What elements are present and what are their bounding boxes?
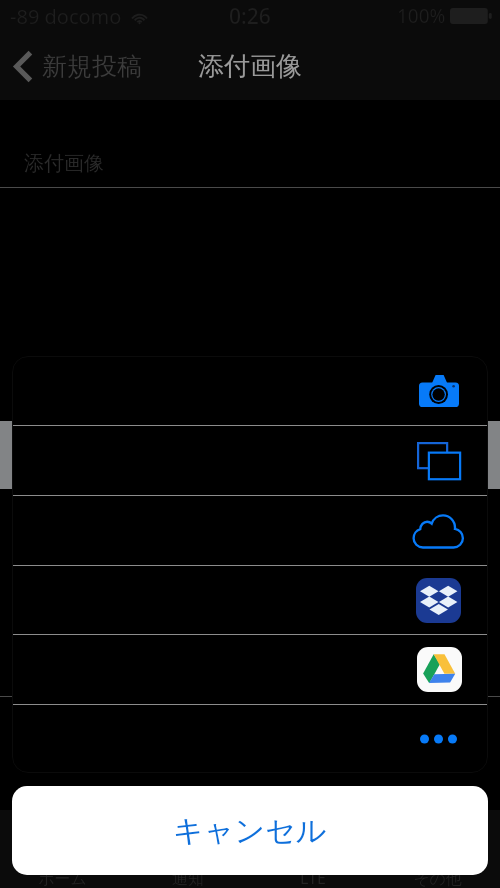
staticText: 0:26 [229,2,271,31]
staticText: キャンセル [173,812,327,850]
staticText: -89 docomo [10,3,122,30]
button[interactable]: 通知 [125,810,250,888]
other: その他 [420,729,457,749]
button[interactable]: その他 [375,810,500,888]
staticText: LTE [300,867,326,888]
button[interactable]: キャンセル [12,786,488,875]
button[interactable]: 新規投稿 [14,50,142,83]
button[interactable]: フォトライブラリ [12,426,488,495]
staticText: その他 [413,869,462,888]
button[interactable]: その他 [12,705,488,773]
other: 写真またはビデオを撮る [419,375,459,407]
other: Dropbox [416,578,461,623]
staticText: 新規投稿 [42,51,142,82]
button[interactable]: LTE [250,810,375,888]
staticText: 100% [397,3,446,29]
button[interactable]: Dropbox [12,566,488,634]
staticText: 添付画像 [198,50,302,83]
staticText: 通知 [172,869,204,888]
other: iCloud Drive [413,514,464,548]
other: フォトライブラリ [417,442,461,480]
staticText: 添付画像 [24,151,104,176]
button[interactable]: 写真またはビデオを撮る [12,356,488,425]
button[interactable]: Google Drive [12,635,488,704]
other: Google Drive [417,647,462,692]
button[interactable]: iCloud Drive [12,496,488,565]
staticText: ホーム [38,869,87,888]
button[interactable]: ホーム [0,810,125,888]
